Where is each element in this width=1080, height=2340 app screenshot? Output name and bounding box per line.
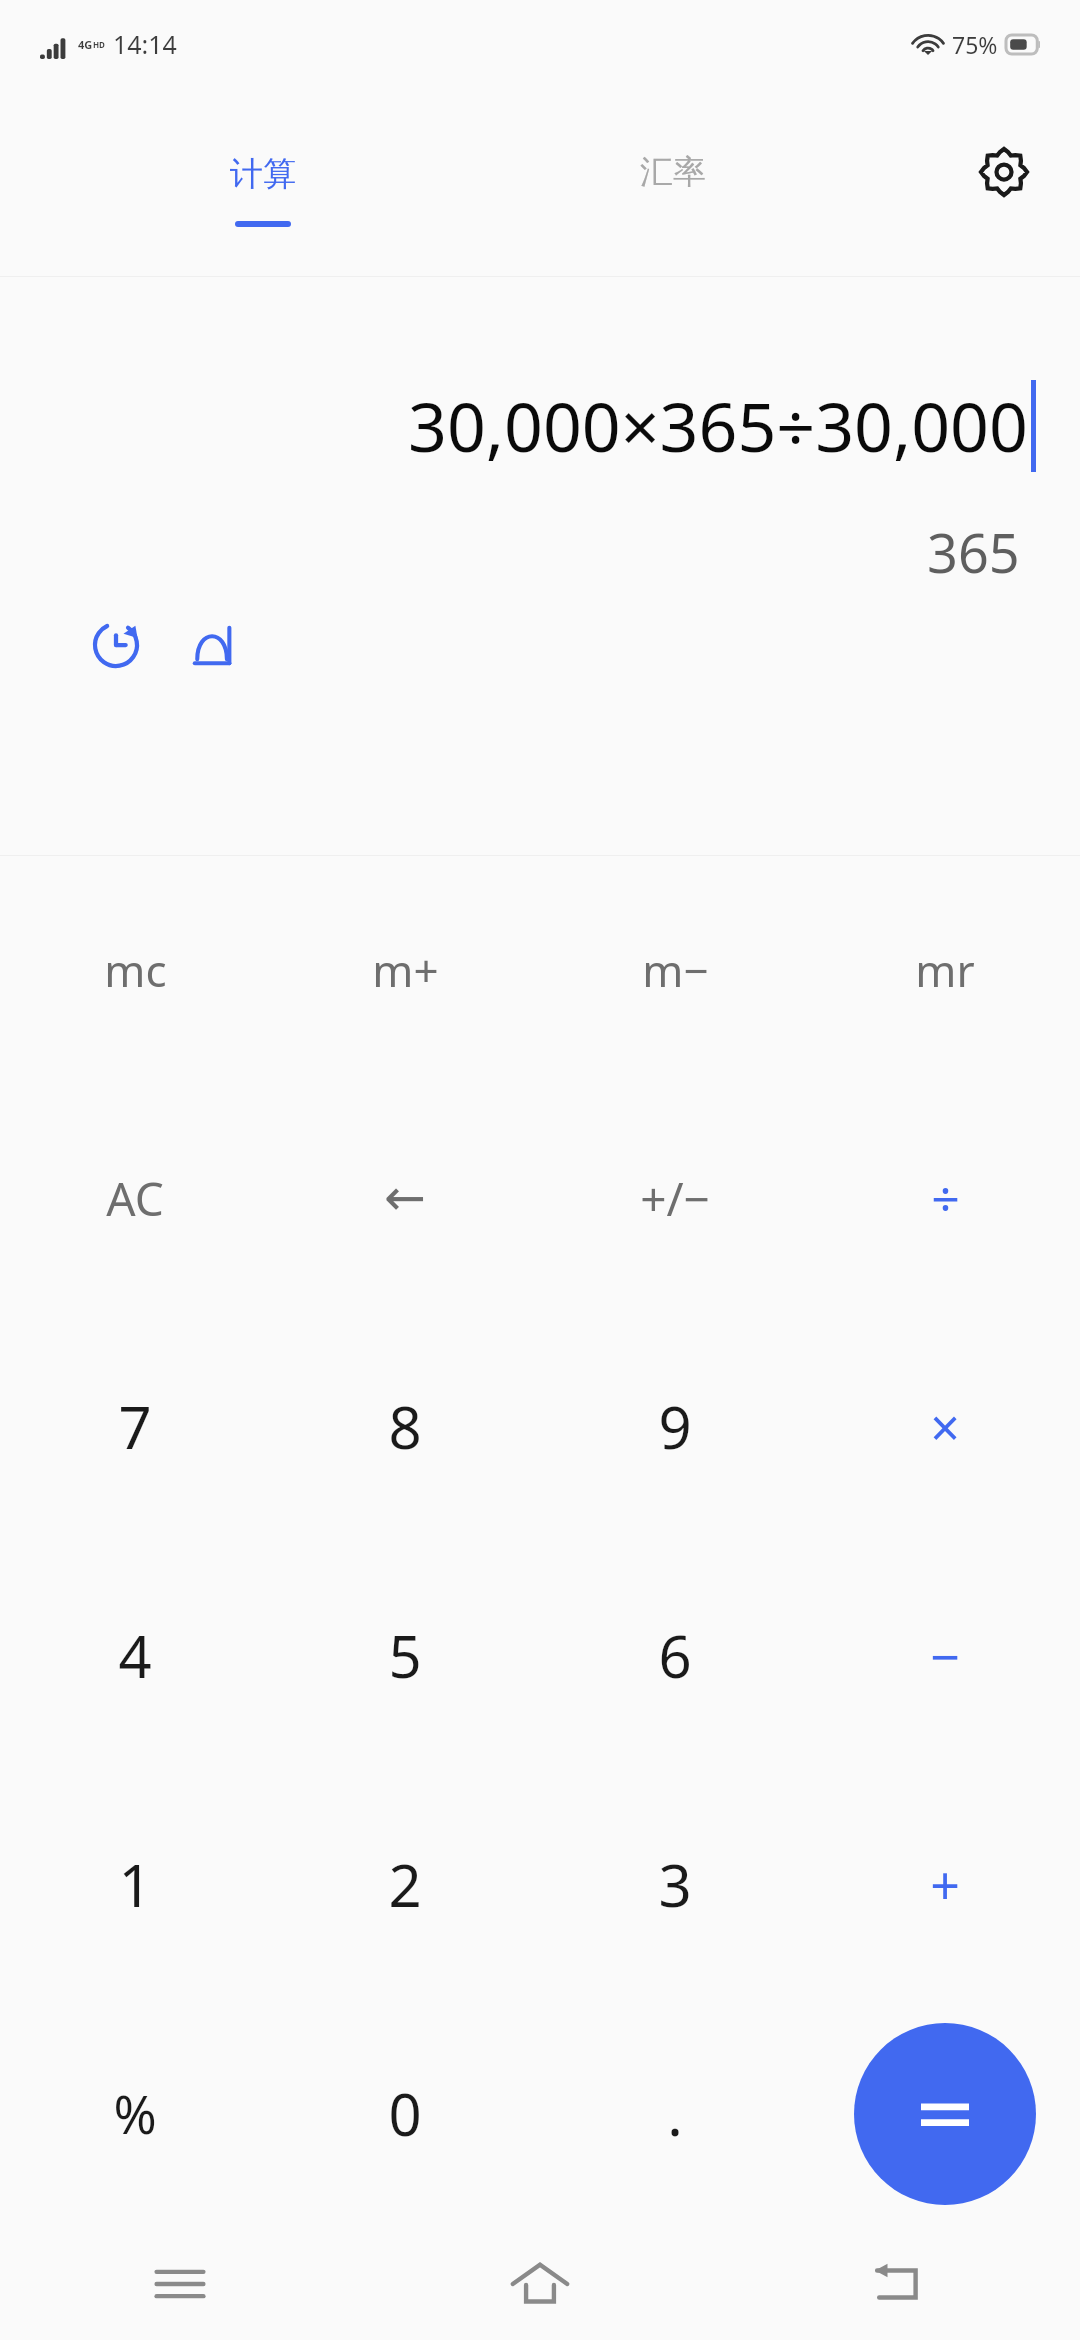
staticText: % — [113, 2078, 157, 2149]
button[interactable]: AC — [0, 1084, 270, 1312]
staticText: 6 — [658, 1616, 692, 1695]
button[interactable]: 0 — [270, 1999, 540, 2228]
button[interactable]: Recent apps — [0, 2228, 360, 2340]
button[interactable]: 8 — [270, 1312, 540, 1541]
staticText: 7 — [118, 1387, 152, 1466]
button[interactable]: Back — [720, 2228, 1080, 2340]
button[interactable]: 6 — [540, 1541, 810, 1770]
button[interactable]: 7 — [0, 1312, 270, 1541]
staticText: 8 — [388, 1387, 422, 1466]
button[interactable]: ← — [270, 1084, 540, 1312]
staticText: mr — [915, 940, 975, 1000]
staticText: +/− — [640, 1167, 710, 1230]
staticText: HD — [93, 39, 105, 50]
button[interactable]: 2 — [270, 1770, 540, 1999]
staticText: m− — [642, 940, 709, 1000]
staticText: 0 — [388, 2074, 422, 2153]
button[interactable]: 5 — [270, 1541, 540, 1770]
button[interactable]: ÷ — [810, 1084, 1080, 1312]
staticText: . — [667, 2074, 683, 2153]
staticText: 75% — [952, 29, 998, 60]
staticText: 4G — [78, 37, 93, 52]
staticText: + — [930, 1849, 960, 1920]
button[interactable]: 1 — [0, 1770, 270, 1999]
button[interactable]: × — [810, 1312, 1080, 1541]
staticText: 30,000×365÷30,000 — [408, 379, 1028, 472]
button[interactable]: 汇率 — [640, 151, 706, 193]
staticText: 计算 — [230, 153, 296, 195]
staticText: 365 — [927, 515, 1020, 589]
button[interactable]: mr — [810, 856, 1080, 1084]
button[interactable]: 4 — [0, 1541, 270, 1770]
button[interactable]: Home — [360, 2228, 720, 2340]
button[interactable]: % — [0, 1999, 270, 2228]
staticText: 14:14 — [113, 27, 177, 61]
button[interactable]: 计算 — [230, 153, 296, 227]
button[interactable] — [810, 1999, 1080, 2228]
staticText: 9 — [658, 1387, 692, 1466]
button[interactable]: + — [810, 1770, 1080, 1999]
staticText: × — [930, 1391, 960, 1462]
staticText: 4 — [118, 1616, 152, 1695]
button[interactable]: +/− — [540, 1084, 810, 1312]
staticText: ÷ — [931, 1164, 960, 1232]
staticText: 5 — [388, 1616, 422, 1695]
button[interactable]: m+ — [270, 856, 540, 1084]
staticText: 3 — [658, 1845, 692, 1924]
staticText: mc — [104, 940, 167, 1000]
button[interactable]: − — [810, 1541, 1080, 1770]
staticText: ← — [384, 1169, 426, 1227]
staticText: 汇率 — [640, 151, 706, 193]
button[interactable]: 9 — [540, 1312, 810, 1541]
button[interactable]: . — [540, 1999, 810, 2228]
button[interactable]: History — [78, 607, 154, 683]
staticText: 2 — [388, 1845, 422, 1924]
staticText: 1 — [118, 1845, 152, 1924]
button[interactable]: Settings — [968, 136, 1040, 208]
button[interactable]: 3 — [540, 1770, 810, 1999]
staticText: m+ — [372, 940, 439, 1000]
button[interactable]: Graph — [176, 607, 252, 683]
staticText: AC — [106, 1167, 164, 1230]
staticText: − — [930, 1620, 960, 1691]
button[interactable]: m− — [540, 856, 810, 1084]
button[interactable]: mc — [0, 856, 270, 1084]
